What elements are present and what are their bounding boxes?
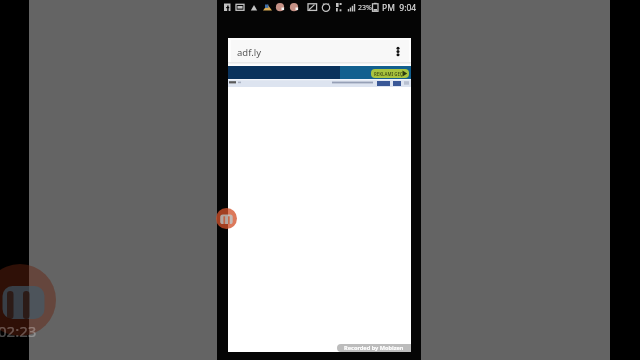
button[interactable]: Mobizen recorder [216,208,237,229]
staticText: adf.ly [237,46,262,59]
button[interactable]: More options [391,38,409,65]
button[interactable]: REKLAMI GEÇ [371,69,409,78]
button[interactable]: adf.ly [231,40,409,62]
staticText: 02:23 [0,321,37,341]
staticText: Recorded by Mobizen [344,344,404,352]
staticText: PM 9:04 [382,2,417,14]
staticText: 23% [358,3,372,13]
staticText: REKLAMI GEÇ [374,71,403,77]
